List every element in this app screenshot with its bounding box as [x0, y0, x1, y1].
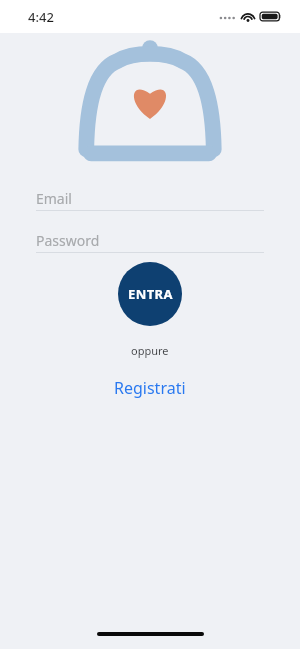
button[interactable]: Registrati [98, 373, 202, 403]
staticText: oppure [131, 343, 169, 358]
staticText: Registrati [114, 377, 186, 399]
button[interactable]: ENTRA [118, 262, 182, 326]
staticText: Password [36, 231, 100, 250]
button[interactable]: Password [36, 229, 264, 253]
staticText: Email [36, 189, 72, 208]
staticText: 4:42 [28, 8, 54, 26]
button[interactable]: Email [36, 187, 264, 211]
other: App logo [75, 38, 225, 173]
staticText: ENTRA [128, 285, 173, 303]
